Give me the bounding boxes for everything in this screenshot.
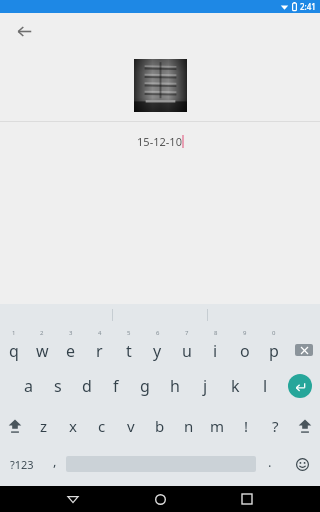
staticText: e [66,340,76,362]
staticText: 9 [243,329,247,337]
button[interactable]: 7 [172,326,201,366]
staticText: 15-12-10 [137,134,182,149]
staticText: c [98,416,106,436]
button[interactable]: h [160,366,190,406]
staticText: a [24,375,33,397]
button[interactable]: 8 [201,326,230,366]
button[interactable]: a [14,366,43,406]
staticText: ?123 [10,457,34,472]
staticText: 3 [69,329,73,337]
button[interactable]: Recents [233,486,261,512]
staticText: h [170,375,180,397]
staticText: 2:41 [300,1,316,12]
button[interactable]: v [116,406,145,446]
staticText: 8 [214,329,218,337]
staticText: 4 [98,329,102,337]
button[interactable]: ! [232,406,261,446]
staticText: 6 [156,329,160,337]
button[interactable]: , [44,446,66,482]
button[interactable]: d [72,366,101,406]
staticText: r [96,340,103,362]
staticText: f [113,375,119,397]
button[interactable]: g [130,366,160,406]
staticText: q [9,340,19,362]
button[interactable]: Back [59,486,87,512]
staticText: k [231,375,240,397]
staticText: x [69,416,77,436]
button[interactable]: Enter [280,366,320,406]
button[interactable]: j [190,366,220,406]
staticText: . [268,453,272,471]
staticText: 2 [40,329,44,337]
button[interactable]: Shift [290,406,320,446]
staticText: p [269,340,279,362]
button[interactable]: Backspace [288,326,320,366]
staticText: 0 [272,329,276,337]
button[interactable]: m [203,406,232,446]
staticText: j [203,375,208,397]
staticText: n [184,416,194,436]
staticText: l [263,375,268,397]
button[interactable]: c [87,406,116,446]
staticText: 5 [127,329,131,337]
button[interactable]: f [101,366,130,406]
button[interactable]: 3 [56,326,85,366]
button[interactable]: ? [261,406,290,446]
staticText: m [210,416,225,436]
button[interactable]: 1 [0,326,28,366]
staticText: 7 [185,329,189,337]
button[interactable]: 0 [259,326,288,366]
staticText: 1 [12,329,16,337]
button[interactable]: b [145,406,174,446]
staticText: v [127,416,135,436]
button[interactable]: x [58,406,87,446]
button[interactable]: 9 [230,326,259,366]
button[interactable]: Shift [0,406,30,446]
staticText: t [126,340,132,362]
button[interactable]: 5 [114,326,143,366]
staticText: y [153,340,162,362]
button[interactable]: 6 [143,326,172,366]
button[interactable]: Emoji [284,446,320,482]
staticText: b [155,416,165,436]
staticText: s [54,375,62,397]
button[interactable]: Back [8,15,40,47]
staticText: o [240,340,250,362]
button[interactable]: s [43,366,72,406]
button[interactable]: 2 [28,326,56,366]
button[interactable]: z [30,406,58,446]
button[interactable]: l [250,366,280,406]
button[interactable]: Home [146,486,174,512]
staticText: u [182,340,192,362]
staticText: ! [244,416,249,436]
staticText: w [36,340,49,362]
staticText: , [53,452,57,470]
button[interactable]: ?123 [0,446,44,482]
button[interactable]: 4 [85,326,114,366]
staticText: i [213,340,218,362]
button[interactable]: . [256,446,284,482]
staticText: g [140,375,150,397]
staticText: z [40,416,48,436]
button[interactable]: n [174,406,203,446]
staticText: d [82,375,92,397]
button[interactable]: k [220,366,250,406]
staticText: ? [272,416,279,436]
